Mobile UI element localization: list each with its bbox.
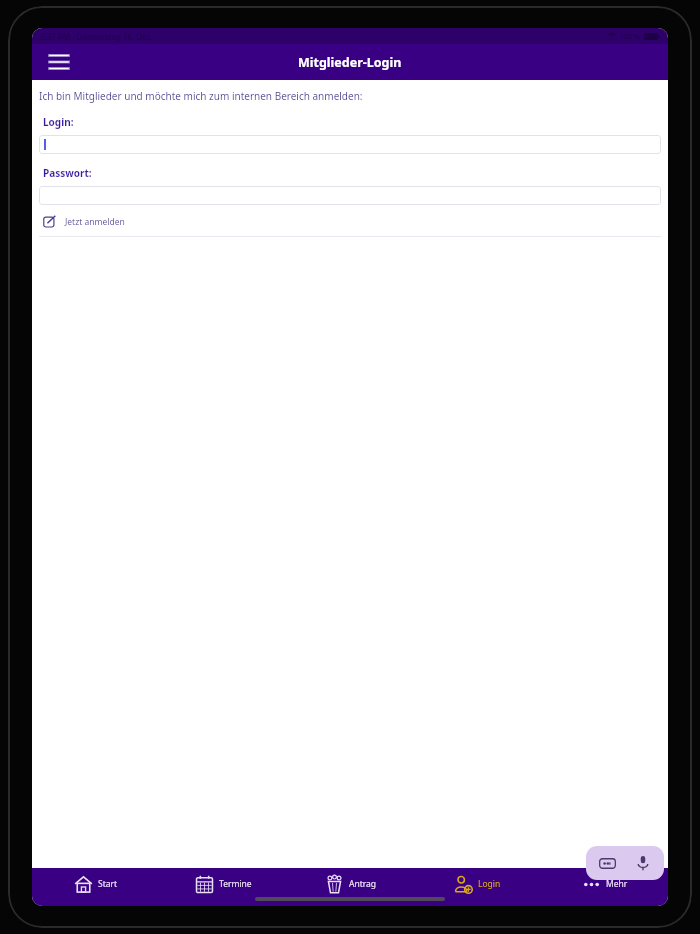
button[interactable]: Mehr (541, 868, 668, 900)
staticText: Mitglieder-Login (298, 54, 402, 71)
button[interactable]: Voice input (632, 852, 654, 874)
staticText: 6:37 PM Donnerstag 16. Dez. (40, 31, 153, 42)
button[interactable]: Jetzt anmelden (39, 213, 125, 230)
button[interactable]: Login (414, 868, 541, 900)
staticText: Antrag (349, 878, 377, 890)
button[interactable]: Start (32, 868, 160, 900)
staticText: Ich bin Mitglieder und möchte mich zum i… (39, 89, 363, 103)
staticText: Jetzt anmelden (65, 216, 125, 228)
button[interactable]: Antrag (287, 868, 414, 900)
button[interactable]: Termine (160, 868, 287, 900)
staticText: Mehr (606, 878, 628, 890)
button[interactable]: Menu (42, 45, 76, 79)
staticText: 100 % (619, 31, 641, 41)
staticText: Passwort: (43, 166, 92, 180)
staticText: Start (98, 878, 118, 890)
button[interactable] (39, 135, 661, 154)
staticText: Termine (219, 878, 252, 890)
button[interactable] (39, 186, 661, 205)
button[interactable]: Keyboard (596, 852, 618, 874)
staticText: Login (478, 878, 501, 890)
staticText: Login: (43, 115, 74, 129)
